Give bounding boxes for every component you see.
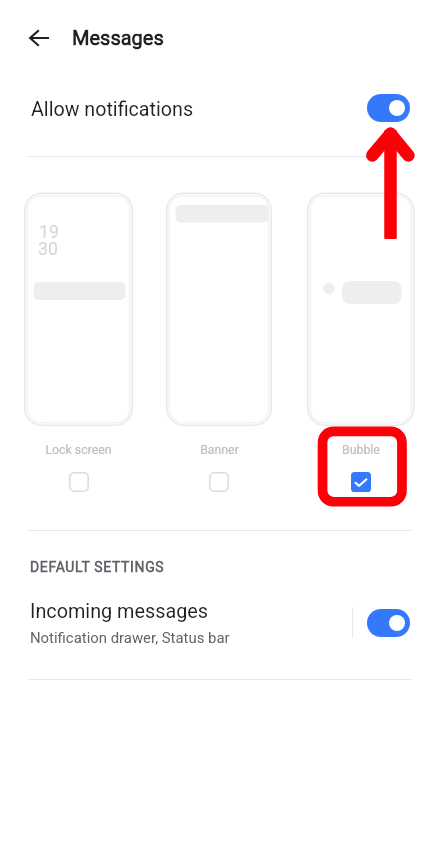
button[interactable]: Toggle [367, 609, 410, 637]
button[interactable]: Lock screen [24, 443, 133, 495]
staticText: 19 [39, 222, 59, 243]
button[interactable]: Bubble [307, 443, 415, 495]
staticText: Messages [72, 26, 164, 49]
button[interactable]: Back [20, 19, 58, 57]
staticText: Bubble [342, 443, 380, 457]
staticText: Notification drawer, Status bar [30, 629, 230, 646]
staticText: Allow notifications [31, 98, 194, 121]
button[interactable]: Incoming messages [0, 595, 440, 650]
button[interactable]: Lock screen preview [24, 193, 133, 427]
button[interactable]: Banner preview [166, 193, 272, 427]
staticText: 30 [38, 239, 58, 260]
staticText: DEFAULT SETTINGS [30, 559, 165, 575]
button[interactable]: Banner [166, 443, 272, 495]
staticText: Lock screen [45, 443, 112, 457]
button[interactable]: Toggle [367, 94, 410, 122]
staticText: Incoming messages [30, 600, 208, 623]
button[interactable]: Bubble preview [307, 193, 415, 427]
staticText: Banner [200, 443, 239, 457]
button[interactable]: Allow notifications [0, 79, 440, 156]
